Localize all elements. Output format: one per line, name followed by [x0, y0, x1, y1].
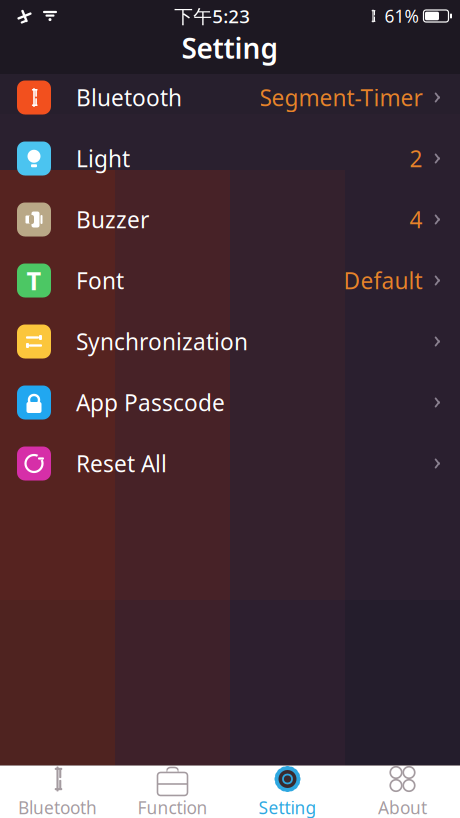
staticText: Light: [76, 143, 130, 173]
staticText: Synchronization: [76, 326, 248, 356]
staticText: Function: [137, 796, 207, 818]
staticText: Buzzer: [76, 204, 149, 234]
button[interactable]: App Passcode: [0, 372, 460, 433]
button[interactable]: About: [345, 765, 460, 818]
staticText: 61%: [384, 4, 418, 27]
staticText: 下午5:23: [174, 4, 250, 28]
button[interactable]: T: [0, 250, 460, 311]
staticText: Setting: [181, 29, 278, 67]
button[interactable]: Reset All: [0, 433, 460, 494]
staticText: About: [378, 796, 427, 818]
staticText: Reset All: [76, 448, 167, 478]
staticText: 2: [410, 143, 423, 173]
button[interactable]: Buzzer: [0, 189, 460, 250]
staticText: Segment-Timer: [260, 82, 423, 112]
staticText: T: [26, 264, 41, 297]
staticText: App Passcode: [76, 387, 225, 417]
button[interactable]: Setting: [230, 765, 345, 818]
button[interactable]: Light: [0, 128, 460, 189]
button[interactable]: Bluetooth: [0, 67, 460, 128]
button[interactable]: Synchronization: [0, 311, 460, 372]
staticText: Bluetooth: [76, 82, 182, 112]
staticText: Default: [344, 265, 423, 295]
staticText: Font: [76, 265, 124, 295]
staticText: Setting: [258, 796, 316, 818]
staticText: 4: [410, 204, 423, 234]
button[interactable]: Function: [115, 765, 230, 818]
staticText: Bluetooth: [18, 796, 97, 818]
button[interactable]: Bluetooth: [0, 765, 115, 818]
